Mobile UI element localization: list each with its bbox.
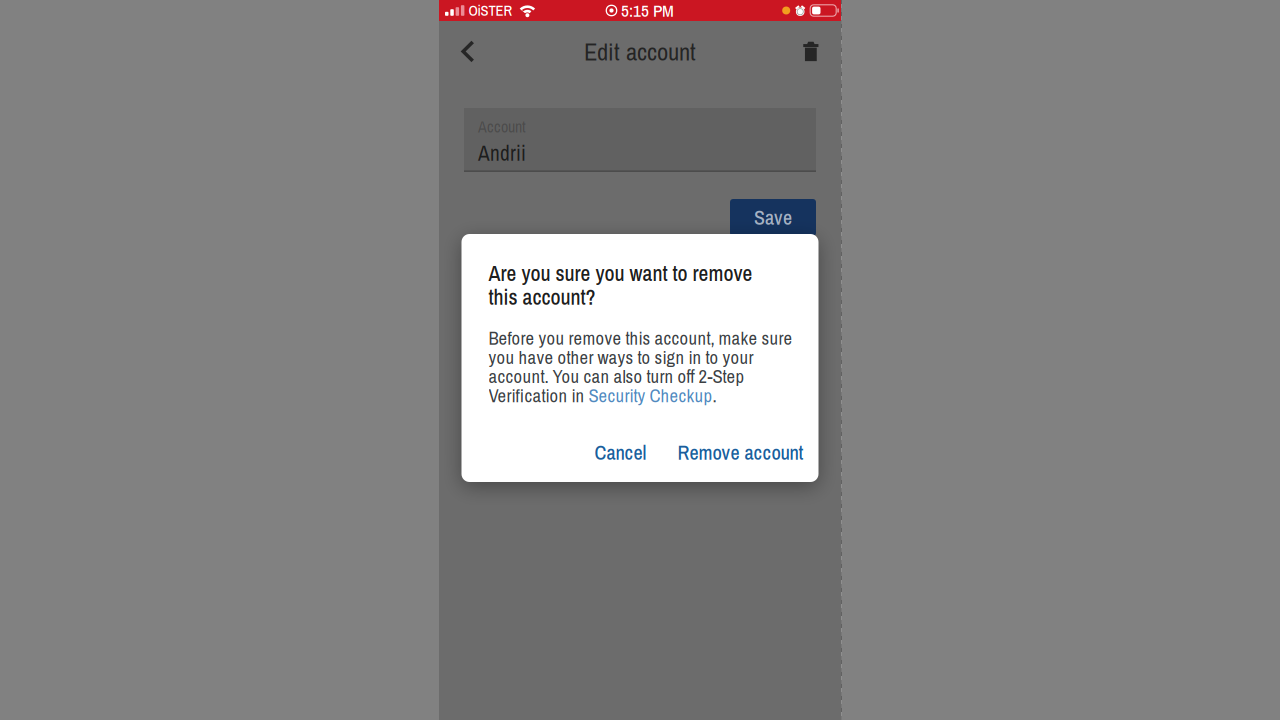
button[interactable]: Delete account — [789, 27, 833, 75]
staticText: Cancel — [594, 439, 646, 466]
button[interactable]: Save — [730, 199, 816, 236]
staticText: 5:15 PM — [621, 0, 674, 22]
staticText: OiSTER — [468, 1, 512, 20]
button[interactable]: Remove account — [667, 429, 813, 476]
staticText: Remove account — [677, 439, 803, 466]
staticText: Save — [754, 204, 792, 231]
button[interactable]: Cancel — [584, 429, 656, 476]
staticText: Andrii — [478, 139, 526, 167]
staticText: Are you sure you want to remove this acc… — [488, 259, 752, 311]
button[interactable]: Back — [445, 27, 489, 75]
staticText: Account — [478, 116, 526, 138]
staticText: Edit account — [584, 35, 696, 68]
staticText: Before you remove this account, make sur… — [488, 325, 792, 408]
